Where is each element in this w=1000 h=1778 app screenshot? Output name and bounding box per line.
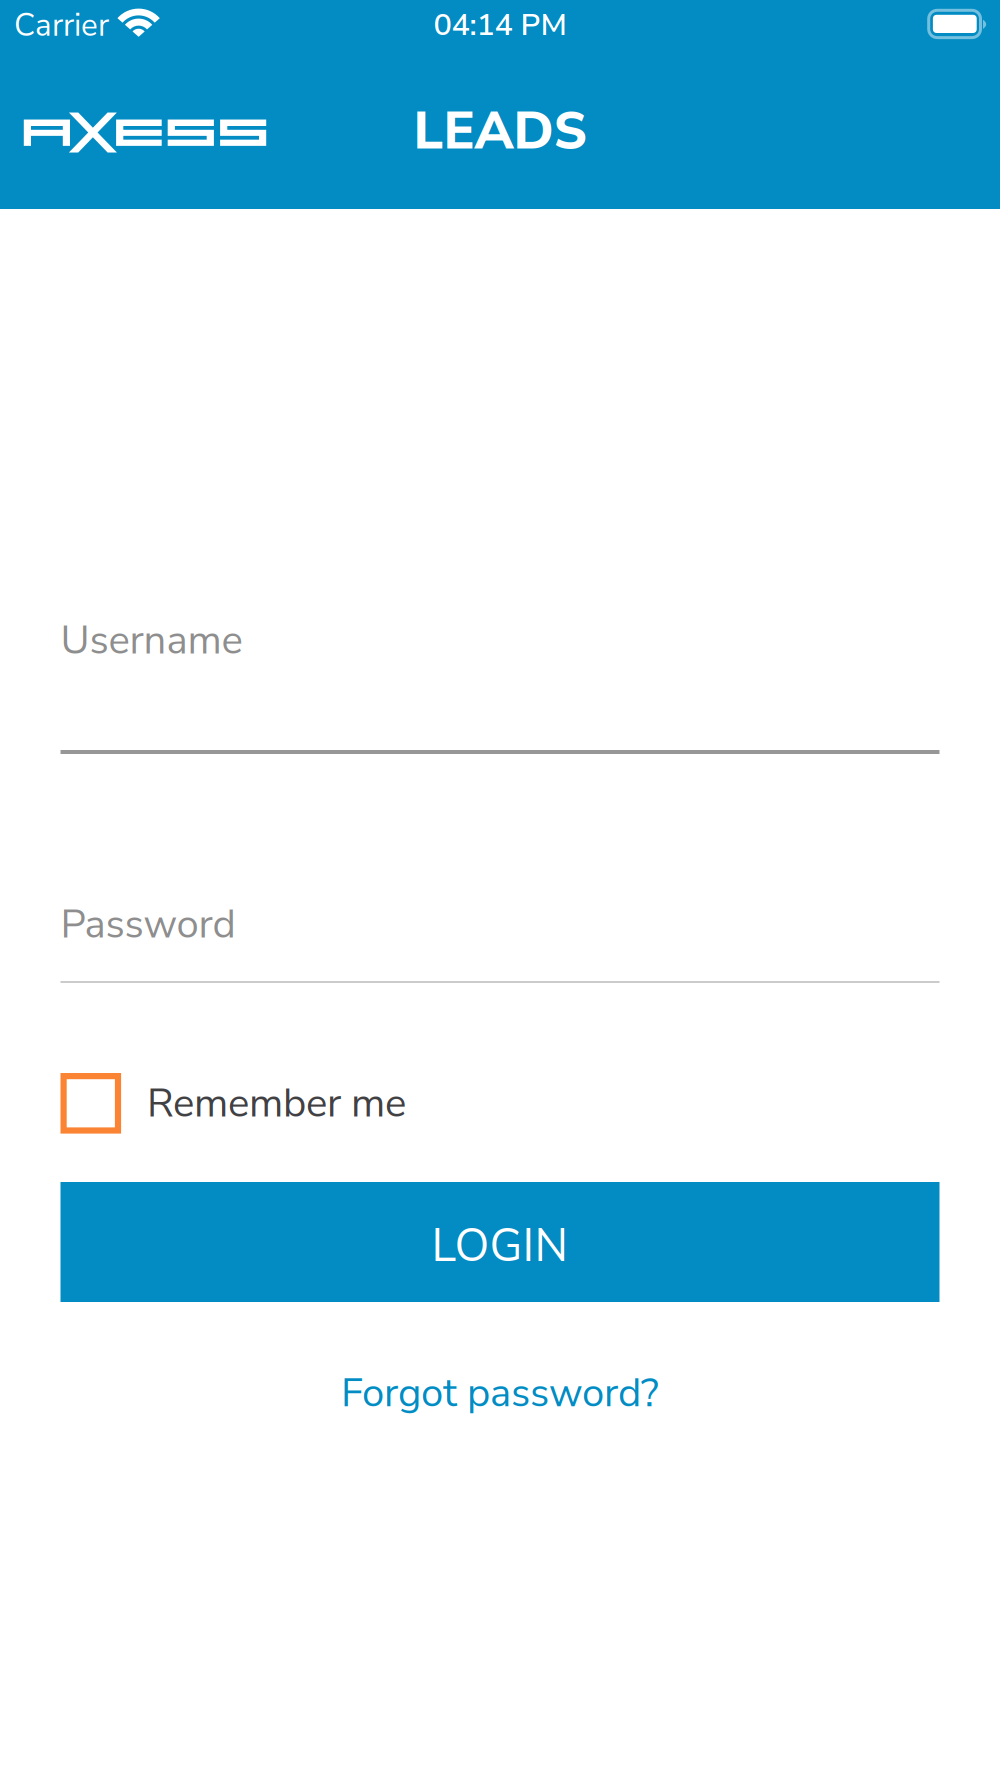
staticText: Password <box>60 897 235 952</box>
button[interactable]: Username <box>60 601 939 752</box>
button[interactable]: Password <box>60 885 939 985</box>
staticText: Forgot password? <box>341 1366 659 1420</box>
staticText: Remember me <box>147 1076 406 1131</box>
staticText: Username <box>60 613 242 668</box>
staticText: LEADS <box>413 96 586 167</box>
staticText: LOGIN <box>431 1215 568 1277</box>
button[interactable]: Remember me <box>60 1073 480 1134</box>
staticText: Carrier <box>14 4 109 47</box>
button[interactable]: Forgot password? <box>250 1362 750 1424</box>
staticText: 04:14 PM <box>433 4 566 46</box>
button[interactable]: LOGIN <box>60 1182 939 1302</box>
